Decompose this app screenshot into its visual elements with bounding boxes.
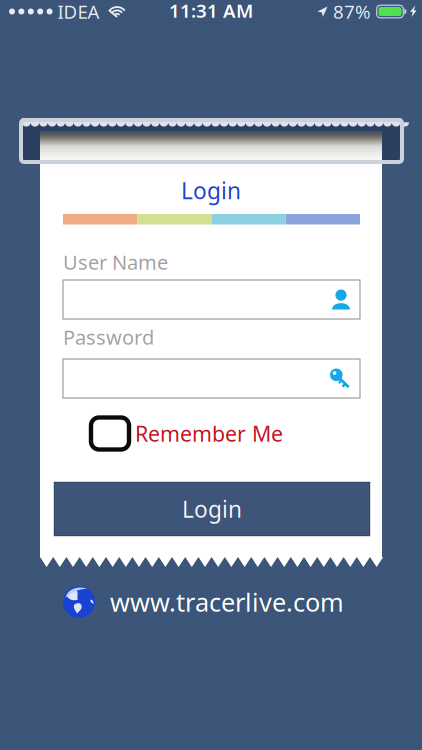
- staticText: Remember Me: [135, 419, 283, 448]
- staticText: 87%: [333, 0, 371, 24]
- staticText: User Name: [63, 249, 168, 275]
- staticText: IDEA: [58, 0, 100, 24]
- staticText: Password: [63, 324, 154, 350]
- staticText: 11:31 AM: [169, 0, 253, 23]
- staticText: www.tracerlive.com: [110, 585, 344, 619]
- button[interactable]: Remember Me: [91, 417, 287, 450]
- button[interactable]: www.tracerlive.com: [63, 585, 344, 619]
- staticText: Login: [182, 494, 242, 524]
- button[interactable]: Login: [54, 482, 370, 536]
- staticText: Login: [181, 175, 241, 205]
